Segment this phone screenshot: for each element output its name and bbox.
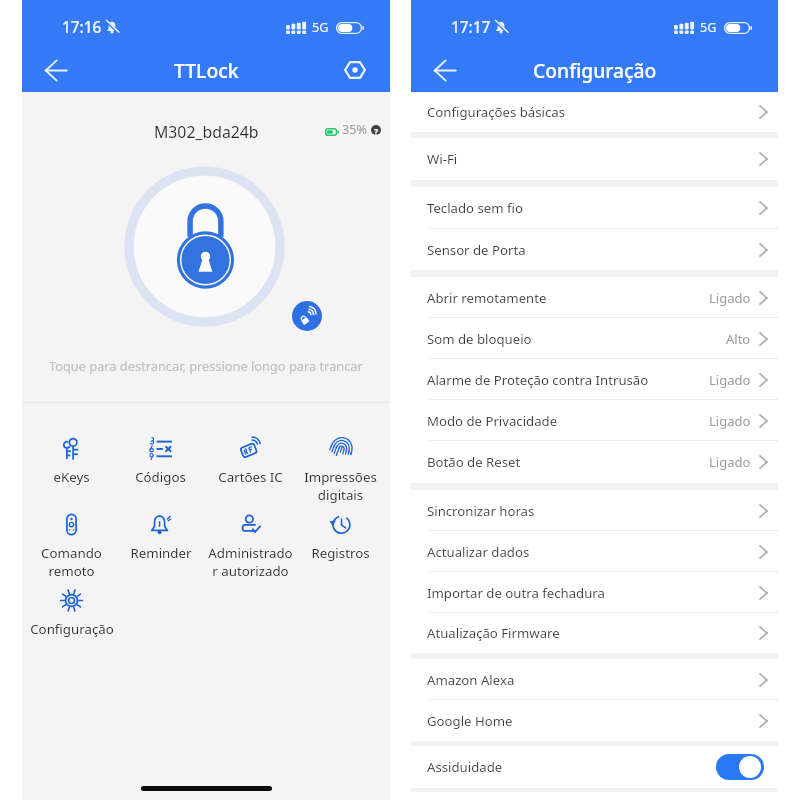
staticText: Actualizar dados bbox=[427, 543, 530, 561]
button[interactable]: Device settings bbox=[336, 51, 374, 89]
staticText: Registros bbox=[311, 544, 370, 562]
staticText: Google Home bbox=[427, 712, 513, 730]
button[interactable]: Back bbox=[37, 51, 75, 89]
staticText: Sensor de Porta bbox=[427, 241, 526, 259]
staticText: Toque para destrancar, pressione longo p… bbox=[49, 357, 363, 374]
staticText: Sincronizar horas bbox=[427, 502, 535, 520]
button[interactable]: Alarme de Proteção contra Intrusão bbox=[411, 359, 778, 400]
staticText: Wi-Fi bbox=[427, 150, 458, 168]
staticText: Teclado sem fio bbox=[427, 199, 523, 217]
button[interactable]: Atualização Firmware bbox=[411, 613, 778, 653]
staticText: Abrir remotamente bbox=[427, 289, 547, 307]
staticText: Alto bbox=[726, 330, 751, 348]
button[interactable]: Teclado sem fio bbox=[411, 187, 778, 229]
staticText: Configuração bbox=[30, 620, 114, 638]
staticText: Alarme de Proteção contra Intrusão bbox=[427, 371, 649, 389]
staticText: Códigos bbox=[135, 468, 186, 486]
staticText: Ligado bbox=[709, 453, 751, 471]
button[interactable]: Códigos bbox=[116, 437, 205, 486]
button[interactable]: Cartões IC bbox=[205, 437, 295, 486]
staticText: Modo de Privacidade bbox=[427, 412, 558, 430]
button[interactable]: Administrado r autorizado bbox=[205, 513, 295, 580]
staticText: M302_bda24b bbox=[154, 121, 259, 143]
button[interactable]: Google Home bbox=[411, 700, 778, 741]
staticText: Administrado r autorizado bbox=[208, 544, 293, 580]
button[interactable]: Toggle Assiduidade bbox=[716, 754, 764, 780]
button[interactable]: Help bbox=[371, 125, 381, 135]
button[interactable]: Assiduidade bbox=[411, 746, 778, 788]
button[interactable]: Amazon Alexa bbox=[411, 659, 778, 700]
button[interactable]: Importar de outra fechadura bbox=[411, 572, 778, 613]
staticText: ? bbox=[374, 125, 379, 135]
staticText: Botão de Reset bbox=[427, 453, 521, 471]
button[interactable]: Sensor de Porta bbox=[411, 229, 778, 270]
staticText: Ligado bbox=[709, 371, 751, 389]
staticText: Atualização Firmware bbox=[427, 624, 560, 642]
staticText: Importar de outra fechadura bbox=[427, 584, 605, 602]
staticText: Ligado bbox=[709, 289, 751, 307]
button[interactable]: Modo de Privacidade bbox=[411, 400, 778, 441]
button[interactable]: eKeys bbox=[27, 437, 116, 486]
button[interactable]: Botão de Reset bbox=[411, 441, 778, 483]
button[interactable]: Som de bloqueio bbox=[411, 318, 778, 359]
staticText: Amazon Alexa bbox=[427, 671, 515, 689]
staticText: Assiduidade bbox=[427, 758, 503, 776]
button[interactable]: Configurações básicas bbox=[411, 92, 778, 132]
staticText: eKeys bbox=[53, 468, 90, 486]
staticText: 17:17 bbox=[451, 17, 491, 38]
staticText: 5G bbox=[700, 19, 717, 36]
button[interactable]: Remote unlock bbox=[292, 301, 322, 331]
staticText: Configuração bbox=[533, 57, 657, 83]
button[interactable]: Sincronizar horas bbox=[411, 490, 778, 531]
button[interactable]: Wi-Fi bbox=[411, 138, 778, 180]
button[interactable]: Impressões digitais bbox=[295, 437, 385, 504]
staticText: 17:16 bbox=[62, 17, 102, 38]
button[interactable]: Configuração bbox=[27, 589, 116, 638]
button[interactable]: Back bbox=[426, 51, 464, 89]
staticText: 35% bbox=[342, 121, 367, 138]
staticText: Comando remoto bbox=[41, 544, 102, 580]
button[interactable]: Reminder bbox=[116, 513, 205, 562]
button[interactable]: Unlock bbox=[124, 166, 285, 327]
button[interactable]: Registros bbox=[295, 513, 385, 562]
button[interactable]: Actualizar dados bbox=[411, 531, 778, 572]
staticText: Impressões digitais bbox=[304, 468, 377, 504]
button[interactable]: Abrir remotamente bbox=[411, 277, 778, 318]
staticText: 5G bbox=[312, 19, 329, 36]
staticText: TTLock bbox=[174, 57, 239, 83]
staticText: Som de bloqueio bbox=[427, 330, 532, 348]
staticText: Cartões IC bbox=[218, 468, 283, 486]
staticText: Reminder bbox=[130, 544, 192, 562]
button[interactable]: Comando remoto bbox=[27, 513, 116, 580]
staticText: Ligado bbox=[709, 412, 751, 430]
staticText: Configurações básicas bbox=[427, 103, 566, 121]
